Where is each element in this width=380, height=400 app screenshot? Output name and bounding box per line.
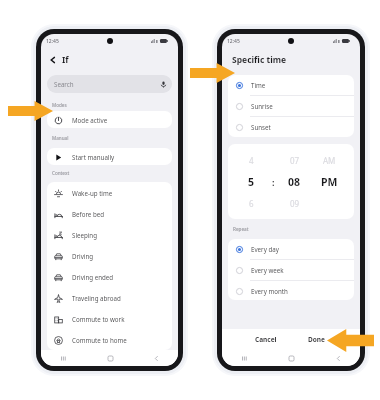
staticText: Before bed	[72, 210, 105, 218]
staticText: PM	[321, 175, 338, 189]
button[interactable]: Done	[291, 329, 341, 350]
button[interactable]: Start manually	[47, 148, 172, 165]
staticText: 12:45	[46, 38, 59, 45]
button[interactable]: Home	[277, 350, 305, 366]
staticText: Commute to home	[72, 336, 127, 344]
button[interactable]: Driving ended	[47, 266, 172, 287]
staticText: AM	[323, 155, 336, 166]
button[interactable]: Driving	[47, 245, 172, 266]
button[interactable]: Sunset	[228, 117, 354, 137]
button[interactable]: Back	[142, 350, 170, 366]
staticText: Sunrise	[251, 102, 273, 110]
staticText: Sleeping	[72, 231, 98, 239]
staticText: Repeat	[233, 226, 249, 232]
staticText: 5	[248, 175, 255, 189]
button[interactable]: Home	[96, 350, 124, 366]
staticText: Done	[308, 335, 325, 344]
staticText: Driving ended	[72, 273, 114, 281]
staticText: Driving	[72, 252, 94, 260]
button[interactable]: Search	[47, 75, 172, 93]
staticText: Every week	[251, 266, 284, 274]
staticText: 08	[288, 175, 301, 189]
button[interactable]: Every day	[228, 239, 354, 259]
button[interactable]: Mode active	[47, 111, 172, 128]
staticText: 6	[249, 198, 254, 209]
staticText: Time	[251, 81, 266, 89]
staticText: 09	[290, 198, 300, 209]
button[interactable]: Recent apps	[230, 350, 258, 366]
button[interactable]: Back	[47, 54, 59, 66]
staticText: Cancel	[255, 335, 277, 344]
staticText: :	[272, 176, 275, 188]
staticText: Context	[52, 170, 70, 176]
button[interactable]: Time	[228, 75, 354, 95]
button[interactable]: Sunrise	[228, 96, 354, 116]
staticText: Mode active	[72, 116, 108, 124]
staticText: Sunset	[251, 123, 271, 131]
staticText: Commute to work	[72, 315, 125, 323]
staticText: Modes	[52, 102, 67, 108]
staticText: Start manually	[72, 153, 115, 161]
staticText: Specific time	[232, 54, 287, 66]
staticText: If	[62, 54, 69, 66]
button[interactable]: Recent apps	[49, 350, 77, 366]
button[interactable]: Sleeping	[47, 224, 172, 245]
staticText: Wake-up time	[72, 189, 113, 197]
button[interactable]: Commute to work	[47, 308, 172, 329]
staticText: 4	[249, 155, 254, 166]
button[interactable]: Every month	[228, 281, 354, 300]
button[interactable]: Voice search	[159, 80, 167, 88]
staticText: Search	[54, 80, 74, 88]
button[interactable]: Back	[324, 350, 352, 366]
staticText: Every month	[251, 287, 288, 295]
button[interactable]: Traveling abroad	[47, 287, 172, 308]
button[interactable]: Every week	[228, 260, 354, 280]
staticText: 12:45	[227, 38, 240, 45]
button[interactable]: Cancel	[241, 329, 291, 350]
staticText: Every day	[251, 245, 279, 253]
staticText: 07	[290, 155, 300, 166]
staticText: Traveling abroad	[72, 294, 121, 302]
button[interactable]: Wake-up time	[47, 182, 172, 203]
button[interactable]: Before bed	[47, 203, 172, 224]
staticText: Manual	[52, 135, 69, 141]
button[interactable]: Commute to home	[47, 329, 172, 350]
